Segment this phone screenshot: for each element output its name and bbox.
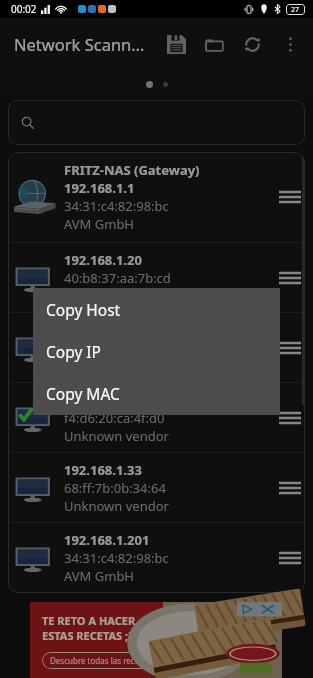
staticText: Unknown vendor: [64, 357, 169, 375]
button[interactable]: Descubre todas las recetas: [42, 652, 159, 669]
button[interactable]: 192.168.1.25: [8, 313, 305, 382]
staticText: 192.168.1.31: [64, 391, 142, 409]
staticText: Network Scann…: [14, 33, 145, 55]
staticText: Copy IP: [46, 341, 101, 362]
button[interactable]: 192.168.1.201: [8, 523, 305, 592]
staticText: 192.168.1.20: [64, 251, 142, 269]
staticText: 27: [291, 5, 300, 15]
staticText: FRITZ-NAS (Gateway): [64, 161, 200, 179]
staticText: 34:31:c4:82:98:bc: [64, 197, 169, 215]
staticText: Unknown vendor: [64, 497, 169, 515]
button[interactable]: Copy IP: [33, 330, 280, 372]
button[interactable]: 192.168.1.31: [8, 383, 305, 452]
staticText: 68:ff:7b:0b:34:64: [64, 479, 166, 497]
button[interactable]: Reorder: [275, 257, 305, 299]
staticText: f4:d6:20:ca:4f:d0: [64, 409, 165, 427]
button[interactable]: Save: [157, 25, 195, 63]
staticText: Descubre todas las recetas: [50, 655, 151, 666]
button[interactable]: Copy MAC: [33, 372, 280, 414]
button[interactable]: Open folder: [195, 25, 233, 63]
staticText: 192.168.1.201: [64, 531, 150, 549]
staticText: 00:02: [11, 2, 37, 16]
button[interactable]: Reorder: [275, 537, 305, 579]
button[interactable]: Reorder: [275, 176, 305, 218]
staticText: ESTAS RECETAS ;): [42, 628, 132, 643]
button[interactable]: 192.168.1.33: [8, 453, 305, 522]
staticText: 192.168.1.1: [64, 179, 135, 197]
button[interactable]: FRITZ-NAS (Gateway): [8, 152, 305, 242]
staticText: Copy Host: [46, 299, 121, 320]
button[interactable]: TE RETO A HACER: [30, 602, 163, 678]
button[interactable]: 192.168.1.20: [8, 243, 305, 312]
button[interactable]: Reorder: [275, 467, 305, 509]
staticText: 34:31:c4:82:98:bc: [64, 549, 169, 567]
staticText: AVM GmbH: [64, 287, 135, 305]
staticText: Unknown vendor: [64, 427, 169, 445]
staticText: AVM GmbH: [64, 215, 135, 233]
staticText: f4:d6:20:ca:4f:d0: [64, 339, 165, 357]
button[interactable]: More options: [271, 25, 309, 63]
button[interactable]: Reorder: [275, 397, 305, 439]
button[interactable]: Advertisement: [163, 602, 282, 678]
button[interactable]: Reorder: [275, 327, 305, 369]
button[interactable]: Refresh: [233, 25, 271, 63]
staticText: AVM GmbH: [64, 567, 135, 585]
staticText: TE RETO A HACER: [42, 613, 136, 628]
staticText: Copy MAC: [46, 383, 120, 404]
staticText: 40:b8:37:aa:7b:cd: [64, 269, 171, 287]
button[interactable]: Search: [8, 100, 305, 145]
button[interactable]: Copy Host: [33, 288, 280, 330]
staticText: 192.168.1.33: [64, 461, 142, 479]
